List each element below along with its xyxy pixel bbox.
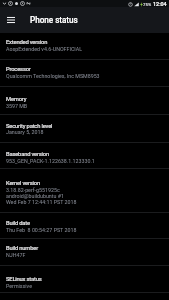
button[interactable]: Build number: [0, 239, 169, 266]
staticText: Baseband version: [6, 151, 49, 158]
staticText: Memory: [6, 96, 27, 103]
staticText: SELinux status: [6, 276, 42, 283]
staticText: Qualcomm Technologies, Inc MSM8953: [6, 73, 100, 79]
staticText: Phone status: [30, 15, 78, 25]
staticText: android@buildubuntu #1: [6, 193, 64, 199]
staticText: Extended version: [6, 39, 48, 46]
button[interactable]: Open navigation menu: [0, 7, 22, 33]
staticText: Wed Feb 7 12:44:11 PST 2018: [6, 199, 77, 205]
staticText: 3597 MB: [6, 103, 28, 109]
staticText: Build number: [6, 245, 38, 252]
staticText: 75%: [143, 2, 152, 7]
button[interactable]: Kernel version: [0, 169, 169, 213]
staticText: 953_GEN_PACK-1.122638.1.123330.1: [6, 158, 95, 164]
staticText: Processor: [6, 66, 31, 73]
button[interactable]: Build date: [0, 213, 169, 239]
staticText: 12:04: [153, 1, 167, 7]
staticText: AospExtended v4.6-UNOFFICIAL: [6, 46, 83, 52]
button[interactable]: Extended version: [0, 33, 169, 60]
staticText: January 5, 2018: [6, 129, 44, 135]
button[interactable]: Memory: [0, 87, 169, 115]
staticText: Kernel version: [6, 180, 40, 187]
staticText: Build date: [6, 220, 30, 227]
button[interactable]: SELinux status: [0, 266, 169, 293]
staticText: Security patch level: [6, 123, 53, 130]
staticText: NJH47F: [6, 252, 26, 258]
staticText: 3.18.82-perf-g551925c: [6, 187, 60, 193]
button[interactable]: Processor: [0, 60, 169, 87]
button[interactable]: Security patch level: [0, 115, 169, 143]
staticText: Thu Feb 8 00:54:27 PST 2018: [6, 227, 77, 233]
button[interactable]: Baseband version: [0, 143, 169, 169]
staticText: Permissive: [6, 283, 32, 289]
